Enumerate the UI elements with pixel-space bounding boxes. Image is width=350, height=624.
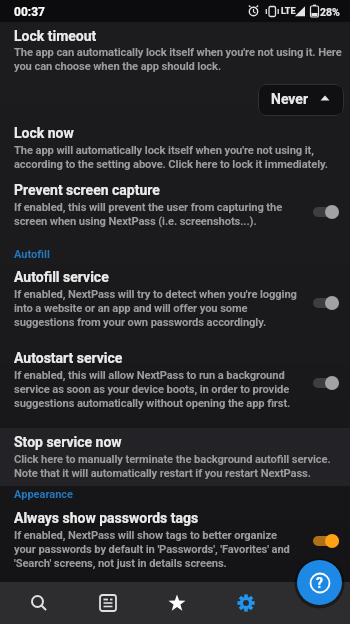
staticText: according to the setting above. Click he… bbox=[14, 158, 328, 171]
staticText: suggestions from your own passwords acco… bbox=[14, 316, 267, 329]
button[interactable]: Never bbox=[258, 84, 344, 116]
staticText: service as soon as your device boots, in… bbox=[14, 383, 290, 396]
staticText: Autostart service bbox=[14, 350, 123, 366]
staticText: Lock now bbox=[14, 125, 74, 141]
button[interactable] bbox=[0, 180, 350, 238]
button[interactable] bbox=[0, 266, 350, 336]
staticText: Click here to manually terminate the bac… bbox=[14, 453, 331, 466]
staticText: If enabled, NextPass will show tags to b… bbox=[14, 529, 277, 542]
button[interactable]: ? bbox=[297, 560, 342, 605]
staticText: Appearance bbox=[14, 488, 73, 501]
button[interactable] bbox=[155, 582, 199, 624]
staticText: Stop service now bbox=[14, 434, 122, 450]
staticText: If enabled, NextPass will try to detect … bbox=[14, 288, 297, 301]
staticText: 'Search' screens, not just in details sc… bbox=[14, 557, 227, 570]
staticText: If enabled, this will allow NextPass to … bbox=[14, 369, 285, 382]
staticText: 28% bbox=[320, 6, 340, 18]
staticText: into a website or an app and will offer … bbox=[14, 302, 248, 315]
staticText: Autofill bbox=[14, 248, 50, 261]
staticText: Autofill service bbox=[14, 269, 109, 285]
staticText: Prevent screen capture bbox=[14, 182, 160, 198]
staticText: The app can automatically lock itself wh… bbox=[14, 46, 342, 59]
staticText: screen when using NextPass (i.e. screens… bbox=[14, 215, 257, 228]
button[interactable] bbox=[0, 24, 350, 80]
button[interactable] bbox=[312, 531, 340, 551]
staticText: Lock timeout bbox=[14, 28, 97, 44]
staticText: Always show passwords tags bbox=[14, 510, 199, 526]
button[interactable] bbox=[0, 348, 350, 418]
staticText: ? bbox=[316, 575, 323, 591]
staticText: Never bbox=[271, 91, 309, 107]
button[interactable] bbox=[224, 582, 268, 624]
button[interactable] bbox=[0, 122, 350, 178]
staticText: LTE bbox=[281, 6, 296, 17]
button[interactable] bbox=[0, 428, 350, 486]
button[interactable] bbox=[17, 582, 61, 624]
button[interactable] bbox=[312, 293, 340, 313]
button[interactable] bbox=[0, 508, 350, 578]
staticText: 00:37 bbox=[14, 5, 45, 19]
button[interactable] bbox=[86, 582, 130, 624]
staticText: The app will automatically lock itself w… bbox=[14, 144, 314, 157]
button[interactable] bbox=[312, 373, 340, 393]
staticText: you can choose when the app should lock. bbox=[14, 60, 222, 73]
staticText: suggestions automatically without openin… bbox=[14, 397, 291, 410]
staticText: Note that it will automatically restart … bbox=[14, 467, 311, 480]
staticText: If enabled, this will prevent the user f… bbox=[14, 201, 283, 214]
staticText: your passwords by default in 'Passwords'… bbox=[14, 543, 290, 556]
button[interactable] bbox=[312, 202, 340, 222]
